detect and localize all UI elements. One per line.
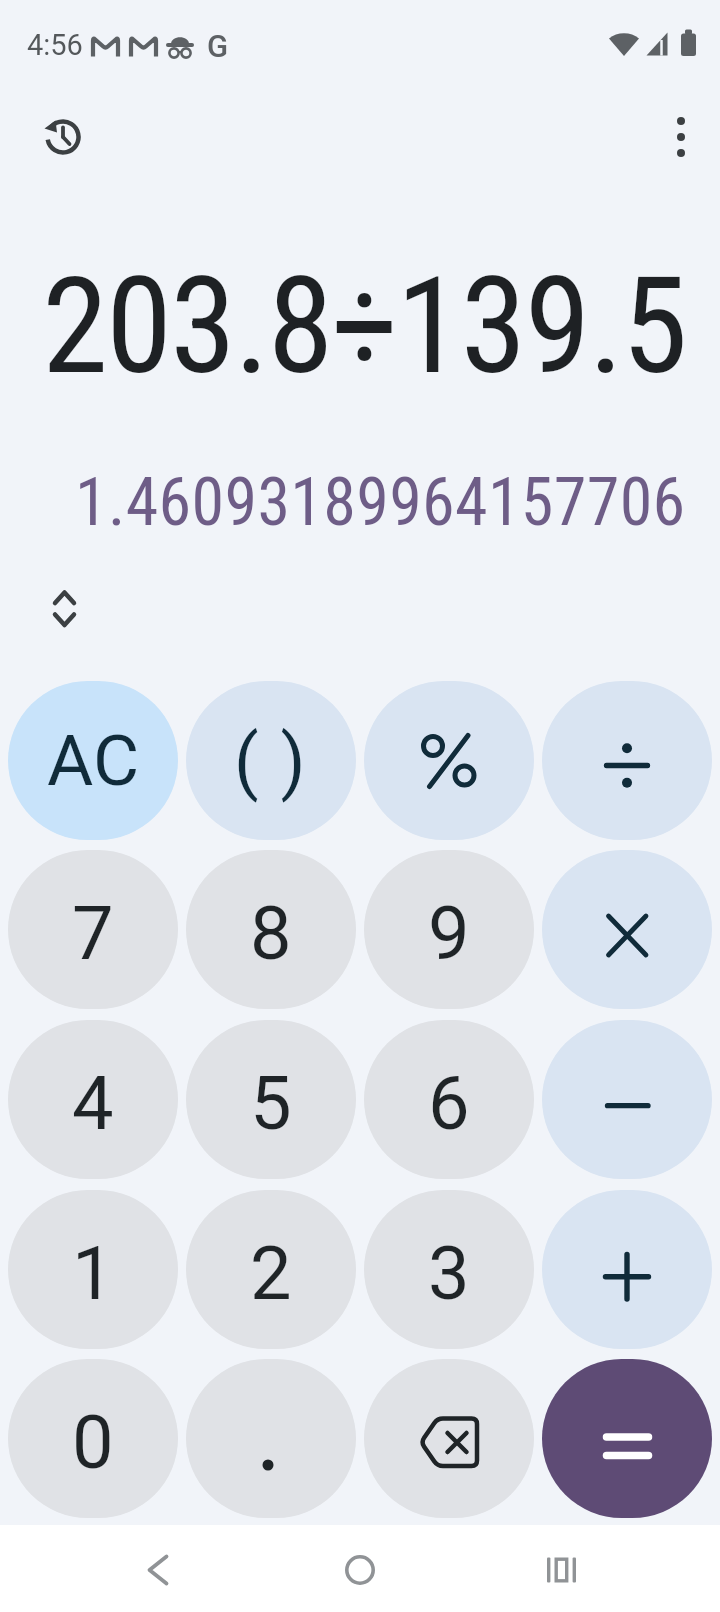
staticText: 9: [428, 890, 470, 977]
button[interactable]: 2: [186, 1190, 356, 1349]
button[interactable]: 7: [8, 850, 178, 1009]
button[interactable]: [542, 850, 712, 1009]
staticText: 0: [72, 1399, 114, 1486]
button[interactable]: [542, 1190, 712, 1349]
staticText: 1: [72, 1230, 114, 1317]
button[interactable]: 8: [186, 850, 356, 1009]
staticText: 1.46093189964157706: [75, 464, 686, 541]
staticText: 4: [72, 1060, 114, 1147]
button[interactable]: 5: [186, 1020, 356, 1179]
button[interactable]: [542, 681, 712, 840]
staticText: 5: [250, 1060, 292, 1147]
staticText: 6: [428, 1060, 470, 1147]
staticText: AC: [47, 719, 140, 802]
button[interactable]: 0: [8, 1359, 178, 1518]
button[interactable]: 9: [364, 850, 534, 1009]
button[interactable]: [35, 109, 91, 165]
button[interactable]: [186, 1359, 356, 1518]
staticText: 203.8÷139.5: [42, 248, 686, 405]
button[interactable]: 3: [364, 1190, 534, 1349]
button[interactable]: [542, 1020, 712, 1179]
button[interactable]: [542, 1359, 712, 1518]
button[interactable]: [364, 1359, 534, 1518]
staticText: 7: [72, 890, 114, 977]
button[interactable]: [130, 1542, 186, 1598]
button[interactable]: [332, 1542, 388, 1598]
staticText: 8: [250, 890, 292, 977]
button[interactable]: [533, 1542, 589, 1598]
button[interactable]: [364, 681, 534, 840]
staticText: 4:56: [27, 28, 83, 62]
button[interactable]: AC: [8, 681, 178, 840]
button[interactable]: [40, 584, 90, 634]
staticText: 2: [250, 1230, 292, 1317]
staticText: 3: [428, 1230, 470, 1317]
staticText: G: [207, 28, 229, 64]
button[interactable]: 6: [364, 1020, 534, 1179]
button[interactable]: [653, 109, 709, 165]
button[interactable]: 4: [8, 1020, 178, 1179]
button[interactable]: ( ): [186, 681, 356, 840]
button[interactable]: 1: [8, 1190, 178, 1349]
staticText: ( ): [234, 719, 308, 803]
